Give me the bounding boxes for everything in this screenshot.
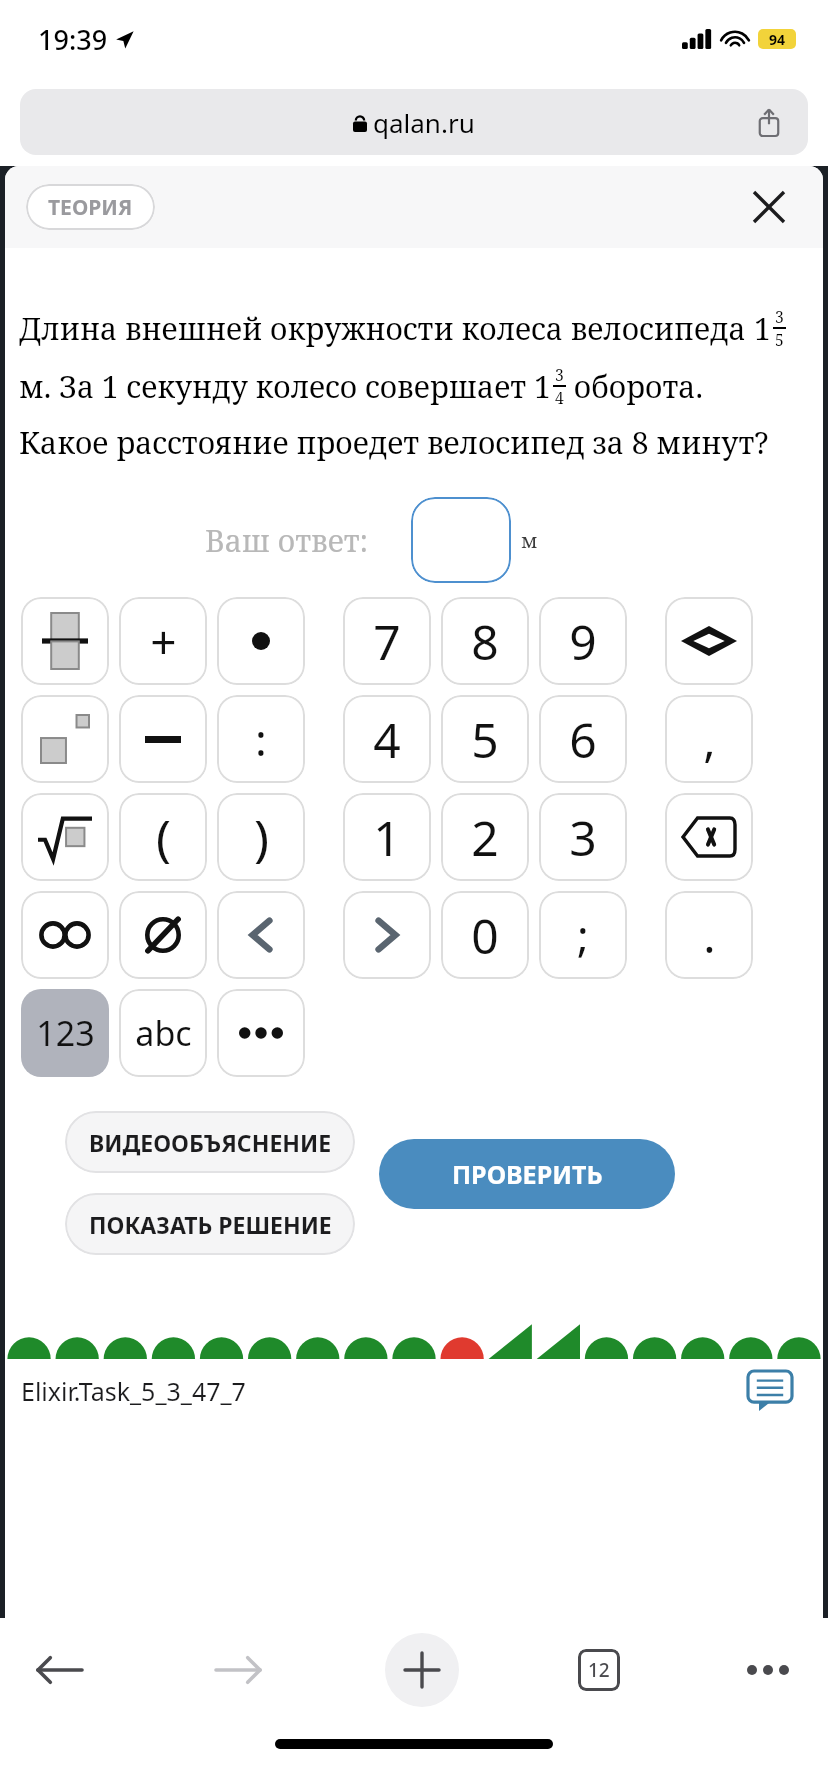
button[interactable]: , <box>665 695 753 783</box>
staticText: ПОКАЗАТЬ РЕШЕНИЕ <box>89 1209 332 1240</box>
button[interactable]: ПРОВЕРИТЬ <box>379 1139 675 1209</box>
button[interactable] <box>411 497 511 583</box>
staticText: ТЕОРИЯ <box>48 193 133 222</box>
staticText: м. За 1 секунду колесо совершает <box>19 366 534 407</box>
staticText: 0 <box>471 903 499 968</box>
staticText: 1 <box>754 308 771 349</box>
button[interactable]: 6 <box>539 695 627 783</box>
button[interactable]: abc <box>119 989 207 1077</box>
button[interactable]: 9 <box>539 597 627 685</box>
button[interactable]: More <box>217 989 305 1077</box>
staticText: 123 <box>36 1010 95 1056</box>
button[interactable]: Minus <box>119 695 207 783</box>
button[interactable]: 5 <box>441 695 529 783</box>
staticText: abc <box>135 1010 192 1056</box>
button[interactable]: . <box>665 891 753 979</box>
button[interactable]: Fraction <box>21 597 109 685</box>
button[interactable]: ( <box>119 793 207 881</box>
staticText: 7 <box>373 609 401 674</box>
button[interactable]: : <box>217 695 305 783</box>
staticText: Какое расстояние проедет велосипед за 8 … <box>19 422 769 463</box>
button[interactable]: 7 <box>343 597 431 685</box>
staticText: , <box>703 708 716 771</box>
button[interactable]: Forward <box>208 1640 268 1700</box>
staticText: qalan.ru <box>373 105 475 140</box>
button[interactable]: 123 <box>21 989 109 1077</box>
button[interactable]: 2 <box>441 793 529 881</box>
button[interactable]: Back <box>30 1640 90 1700</box>
button[interactable]: Tabs <box>577 1648 621 1692</box>
staticText: ) <box>254 803 269 871</box>
staticText: 1 <box>534 366 551 407</box>
button[interactable]: ВИДЕООБЪЯСНЕНИЕ <box>65 1111 355 1173</box>
staticText: Ваш ответ: <box>205 520 369 561</box>
button[interactable]: Power <box>21 695 109 783</box>
staticText: 9 <box>569 609 597 674</box>
button[interactable]: Multiply <box>217 597 305 685</box>
button[interactable]: ТЕОРИЯ <box>26 184 155 230</box>
staticText: 94 <box>769 30 786 49</box>
staticText: 3 <box>569 805 597 870</box>
staticText: 2 <box>471 805 499 870</box>
staticText: оборота. <box>566 366 703 407</box>
staticText: ПРОВЕРИТЬ <box>452 1157 603 1191</box>
button[interactable]: Comments <box>743 1364 797 1418</box>
button[interactable]: ; <box>539 891 627 979</box>
staticText: + <box>150 610 177 673</box>
button[interactable]: Square root <box>21 793 109 881</box>
staticText: 12 <box>588 1657 610 1683</box>
staticText: 3 <box>555 364 564 385</box>
button[interactable]: Move left <box>217 891 305 979</box>
staticText: 1 <box>373 805 401 870</box>
button[interactable]: Move right <box>343 891 431 979</box>
staticText: 5 <box>471 707 499 772</box>
staticText: м <box>521 527 538 554</box>
button[interactable]: Share <box>752 105 786 139</box>
button[interactable]: Empty set <box>119 891 207 979</box>
staticText: Elixir.Task_5_3_47_7 <box>21 1374 246 1408</box>
staticText: 3 <box>775 306 784 327</box>
staticText: . <box>703 904 716 967</box>
button[interactable]: Infinity <box>21 891 109 979</box>
button[interactable]: ) <box>217 793 305 881</box>
button[interactable]: qalan.ru <box>20 89 808 155</box>
button[interactable]: Close <box>743 181 795 233</box>
button[interactable]: ПОКАЗАТЬ РЕШЕНИЕ <box>65 1193 355 1255</box>
staticText: 8 <box>471 609 499 674</box>
staticText: 6 <box>569 707 597 772</box>
button[interactable]: Diamond <box>665 597 753 685</box>
staticText: ВИДЕООБЪЯСНЕНИЕ <box>89 1127 332 1158</box>
button[interactable]: + <box>119 597 207 685</box>
button[interactable]: 1 <box>343 793 431 881</box>
staticText: : <box>255 709 267 769</box>
staticText: Длина внешней окружности колеса велосипе… <box>19 308 754 349</box>
staticText: ( <box>156 803 171 871</box>
button[interactable]: Backspace <box>665 793 753 881</box>
button[interactable]: 0 <box>441 891 529 979</box>
button[interactable]: New tab <box>385 1633 459 1707</box>
staticText: 5 <box>775 329 784 350</box>
button[interactable]: 4 <box>343 695 431 783</box>
staticText: 4 <box>373 707 401 772</box>
staticText: ; <box>577 905 589 965</box>
button[interactable]: 8 <box>441 597 529 685</box>
button[interactable]: More <box>738 1640 798 1700</box>
button[interactable]: 3 <box>539 793 627 881</box>
staticText: 4 <box>555 387 564 408</box>
staticText: 19:39 <box>38 21 108 58</box>
